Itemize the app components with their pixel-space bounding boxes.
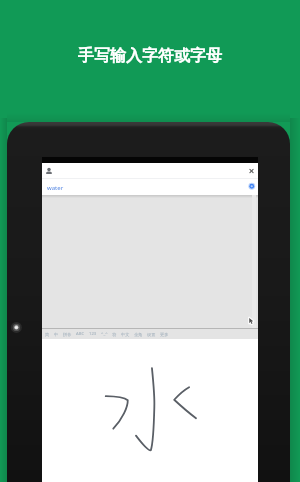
button[interactable]: 更多 [160,332,169,337]
button[interactable]: 设置 [147,332,156,337]
button[interactable]: Account [45,167,53,175]
button[interactable]: 中文 [121,332,130,337]
button[interactable]: 全角 [134,332,143,337]
button[interactable]: ^_^ [101,331,108,337]
button[interactable]: 简 [45,332,50,337]
staticText: water [47,184,64,192]
button[interactable]: Search [245,180,258,193]
button[interactable]: 拼音 [63,332,72,337]
button[interactable]: Close [245,165,258,178]
button[interactable]: 123 [89,331,97,337]
staticText: 手写输入字符或字母 [0,46,300,66]
button[interactable]: 符 [112,332,117,337]
button[interactable]: ABC [76,331,85,337]
button[interactable]: 中 [54,332,59,337]
